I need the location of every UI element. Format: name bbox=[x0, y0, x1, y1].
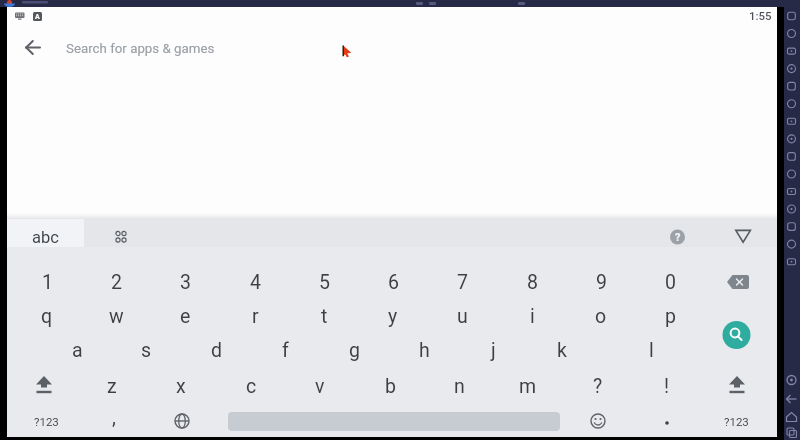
button[interactable]: w bbox=[90, 302, 142, 330]
button[interactable]: Search for apps & games bbox=[66, 38, 366, 59]
staticText: 0 bbox=[665, 271, 676, 294]
button[interactable]: f bbox=[259, 336, 311, 364]
staticText: 3 bbox=[180, 271, 191, 294]
staticText: r bbox=[252, 305, 259, 328]
staticText: s bbox=[141, 339, 152, 362]
button[interactable]: n bbox=[433, 372, 485, 400]
staticText: l bbox=[649, 339, 654, 362]
button[interactable]: 8 bbox=[506, 268, 558, 296]
staticText: ?123 bbox=[724, 415, 749, 428]
staticText: m bbox=[519, 375, 537, 398]
button[interactable]: ?123 bbox=[711, 410, 761, 432]
staticText: a bbox=[72, 339, 83, 362]
staticText: e bbox=[180, 305, 191, 328]
staticText: z bbox=[107, 375, 117, 398]
button[interactable]: h bbox=[398, 336, 450, 364]
button[interactable]: 4 bbox=[229, 268, 281, 296]
staticText: c bbox=[246, 375, 257, 398]
button[interactable]: k bbox=[536, 336, 588, 364]
button[interactable]: , bbox=[88, 403, 140, 431]
staticText: g bbox=[349, 339, 360, 362]
staticText: d bbox=[211, 339, 222, 362]
staticText: i bbox=[530, 305, 535, 328]
staticText: k bbox=[557, 339, 567, 362]
staticText: Search for apps & games bbox=[66, 41, 215, 57]
button[interactable]: t bbox=[298, 302, 350, 330]
staticText: 7 bbox=[457, 271, 468, 294]
button[interactable]: u bbox=[436, 302, 488, 330]
button[interactable]: m bbox=[502, 372, 554, 400]
staticText: j bbox=[491, 339, 496, 362]
button[interactable]: ! bbox=[641, 372, 693, 400]
staticText: 2 bbox=[111, 271, 122, 294]
staticText: 6 bbox=[388, 271, 399, 294]
button[interactable]: i bbox=[506, 302, 558, 330]
staticText: abc bbox=[32, 228, 59, 247]
button[interactable]: r bbox=[229, 302, 281, 330]
staticText: x bbox=[176, 375, 186, 398]
button[interactable]: 3 bbox=[159, 268, 211, 296]
staticText: 1:55 bbox=[749, 9, 772, 22]
staticText: v bbox=[315, 375, 325, 398]
button[interactable]: 6 bbox=[367, 268, 419, 296]
staticText: q bbox=[41, 305, 53, 328]
button[interactable]: 9 bbox=[575, 268, 627, 296]
button[interactable]: v bbox=[294, 372, 346, 400]
button[interactable]: l bbox=[625, 336, 677, 364]
button[interactable]: o bbox=[575, 302, 627, 330]
staticText: ?123 bbox=[34, 415, 59, 428]
staticText: A bbox=[35, 13, 40, 21]
button[interactable]: ? bbox=[670, 229, 685, 245]
button[interactable]: 7 bbox=[436, 268, 488, 296]
button[interactable]: y bbox=[367, 302, 419, 330]
button[interactable]: ? bbox=[572, 372, 624, 400]
button[interactable]: 1 bbox=[21, 268, 73, 296]
button[interactable]: a bbox=[51, 336, 103, 364]
staticText: 5 bbox=[319, 271, 330, 294]
button[interactable]: z bbox=[86, 372, 138, 400]
staticText: y bbox=[388, 305, 398, 328]
button[interactable] bbox=[7, 219, 84, 247]
staticText: u bbox=[457, 305, 468, 328]
staticText: f bbox=[282, 339, 289, 362]
button[interactable]: x bbox=[155, 372, 207, 400]
button[interactable]: s bbox=[120, 336, 172, 364]
staticText: 4 bbox=[250, 271, 261, 294]
button[interactable]: q bbox=[21, 302, 73, 330]
staticText: , bbox=[112, 406, 116, 429]
button[interactable]: d bbox=[190, 336, 242, 364]
button[interactable]: j bbox=[467, 336, 519, 364]
button[interactable]: c bbox=[225, 372, 277, 400]
button[interactable]: g bbox=[328, 336, 380, 364]
button[interactable]: p bbox=[644, 302, 696, 330]
button[interactable]: 5 bbox=[298, 268, 350, 296]
button[interactable]: 0 bbox=[644, 268, 696, 296]
staticText: p bbox=[665, 305, 676, 328]
button[interactable]: abc bbox=[20, 225, 70, 249]
staticText: o bbox=[595, 305, 607, 328]
button[interactable]: e bbox=[159, 302, 211, 330]
staticText: n bbox=[454, 375, 465, 398]
button[interactable]: ?123 bbox=[21, 410, 71, 432]
button[interactable]: b bbox=[364, 372, 416, 400]
button[interactable]: 2 bbox=[90, 268, 142, 296]
staticText: t bbox=[321, 305, 328, 328]
staticText: 1 bbox=[42, 271, 53, 294]
staticText: h bbox=[419, 339, 430, 362]
staticText: ? bbox=[593, 375, 603, 398]
staticText: ? bbox=[675, 231, 681, 244]
staticText: b bbox=[385, 375, 396, 398]
staticText: 8 bbox=[527, 271, 538, 294]
staticText: w bbox=[109, 305, 124, 328]
staticText: ! bbox=[664, 375, 670, 398]
staticText: 9 bbox=[596, 271, 607, 294]
